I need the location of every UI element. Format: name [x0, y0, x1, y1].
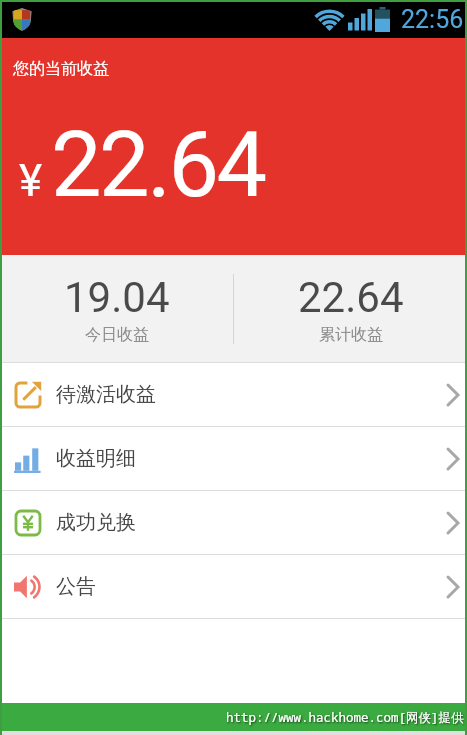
button[interactable]: 公告 — [0, 555, 467, 618]
button[interactable]: 成功兑换 — [0, 491, 467, 554]
staticText: 公告 — [56, 574, 96, 599]
staticText: 今日收益 — [85, 325, 149, 345]
staticText: 收益明细 — [56, 446, 136, 471]
staticText: 待激活收益 — [56, 382, 156, 407]
staticText: 22.64 — [51, 113, 265, 218]
staticText: 成功兑换 — [56, 510, 136, 535]
staticText: 22.64 — [298, 273, 404, 322]
staticText: 您的当前收益 — [13, 59, 109, 79]
staticText: http://www.hackhome.com[网侠]提供 — [226, 709, 464, 726]
staticText: 累计收益 — [319, 325, 383, 345]
button[interactable]: 待激活收益 — [0, 363, 467, 426]
button[interactable]: 收益明细 — [0, 427, 467, 490]
staticText: 22:56 — [401, 5, 464, 34]
staticText: ¥ — [19, 155, 43, 207]
staticText: 19.04 — [64, 273, 170, 322]
